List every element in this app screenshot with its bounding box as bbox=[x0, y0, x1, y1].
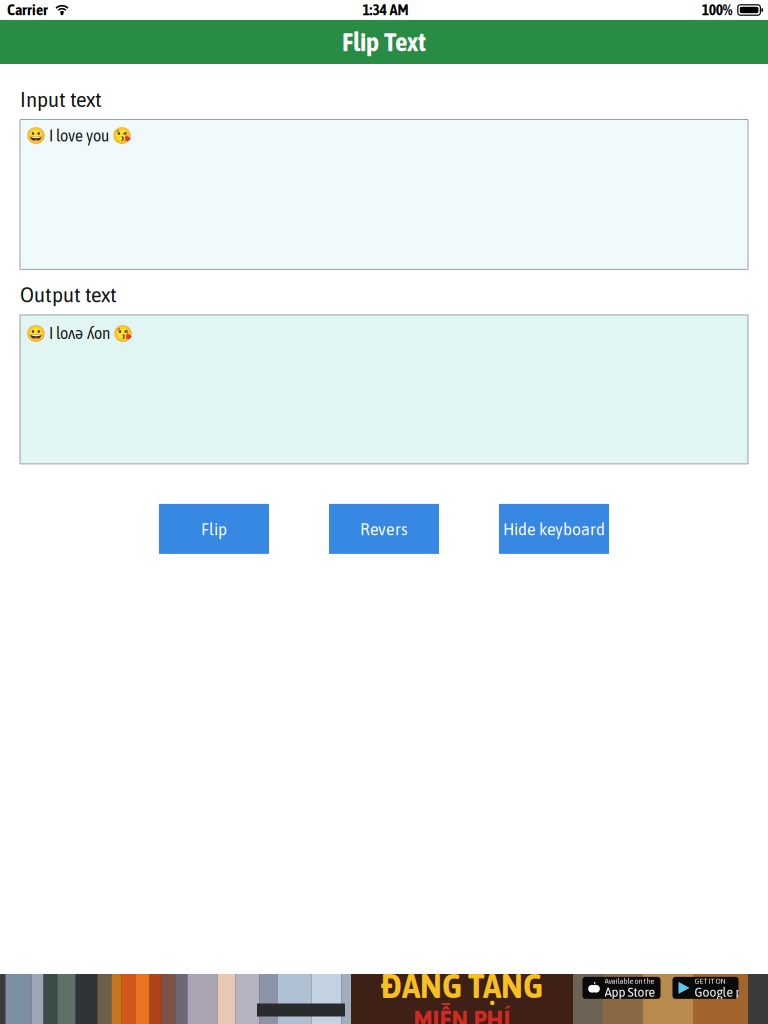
staticText: Google play bbox=[694, 984, 759, 1000]
staticText: 100% bbox=[702, 2, 733, 18]
staticText: MIỄN PHÍ bbox=[413, 1005, 510, 1024]
button[interactable]: Hide keyboard bbox=[499, 504, 609, 554]
staticText: Available on the bbox=[604, 976, 654, 985]
staticText: Output text bbox=[20, 282, 117, 307]
staticText: 😀 I love you 😘 bbox=[26, 126, 132, 145]
staticText: Hide keyboard bbox=[503, 519, 605, 539]
button[interactable]: Flip bbox=[159, 504, 269, 554]
staticText: Flip bbox=[201, 519, 227, 539]
staticText: App Store bbox=[604, 984, 655, 1000]
staticText: Carrier bbox=[7, 2, 48, 18]
staticText: GET IT ON bbox=[694, 976, 725, 985]
staticText: Revers bbox=[360, 519, 408, 539]
button[interactable]: Revers bbox=[329, 504, 439, 554]
staticText: 😀 I loʌǝ ʎon 😘 bbox=[26, 322, 133, 344]
button[interactable]: Advertisement bbox=[0, 974, 768, 1024]
staticText: ĐANG TẶNG bbox=[381, 967, 543, 1005]
staticText: Input text bbox=[20, 87, 102, 111]
staticText: 1:34 AM bbox=[362, 2, 408, 18]
staticText: Flip Text bbox=[342, 27, 426, 56]
